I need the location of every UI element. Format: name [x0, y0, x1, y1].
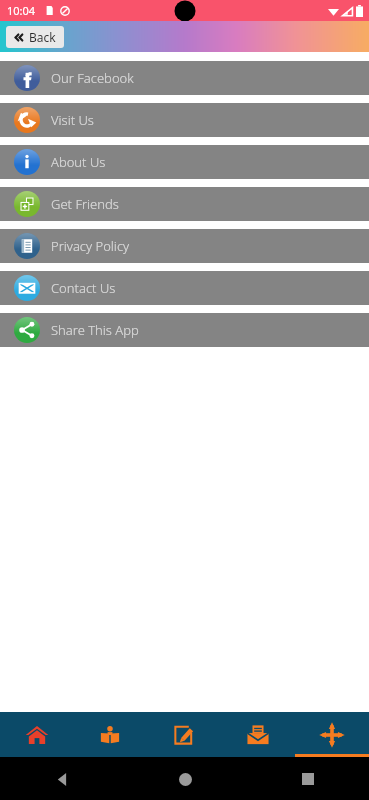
- staticText: Get Friends: [51, 195, 119, 213]
- button[interactable]: Home: [0, 712, 73, 757]
- button[interactable]: Recent apps: [291, 762, 325, 796]
- button[interactable]: Back: [6, 26, 64, 48]
- button[interactable]: Our Facebook: [0, 61, 369, 95]
- button[interactable]: Back: [45, 762, 79, 796]
- button[interactable]: Get Friends: [0, 187, 369, 221]
- button[interactable]: Privacy Policy: [0, 229, 369, 263]
- staticText: Contact Us: [51, 279, 116, 297]
- button[interactable]: Messages: [221, 712, 295, 757]
- button[interactable]: Write: [147, 712, 221, 757]
- button[interactable]: Home: [168, 762, 202, 796]
- staticText: 10:04: [7, 3, 36, 18]
- button[interactable]: Share This App: [0, 313, 369, 347]
- staticText: Share This App: [51, 321, 139, 339]
- button[interactable]: About Us: [0, 145, 369, 179]
- staticText: About Us: [51, 153, 106, 171]
- staticText: Privacy Policy: [51, 237, 130, 255]
- staticText: Our Facebook: [51, 69, 134, 87]
- staticText: Back: [29, 29, 56, 45]
- button[interactable]: Read: [73, 712, 147, 757]
- staticText: Visit Us: [51, 111, 94, 129]
- button[interactable]: More: [295, 712, 369, 757]
- button[interactable]: Visit Us: [0, 103, 369, 137]
- button[interactable]: Contact Us: [0, 271, 369, 305]
